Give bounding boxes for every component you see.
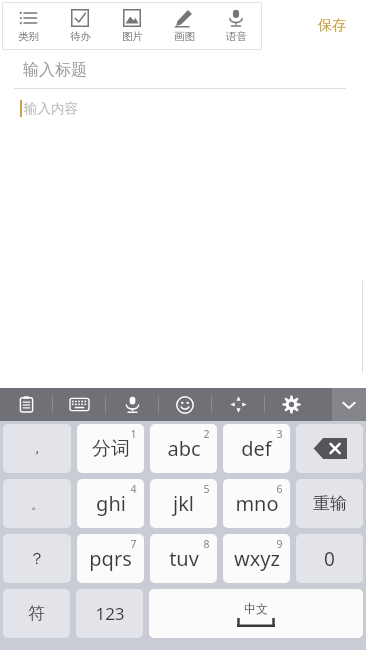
staticText: 3 — [276, 427, 283, 441]
staticText: 语音 — [226, 30, 247, 43]
staticText: ghi — [96, 490, 126, 517]
button[interactable]: 符 — [3, 589, 70, 638]
staticText: 。 — [31, 496, 44, 512]
staticText: 符 — [28, 603, 45, 624]
staticText: 123 — [95, 602, 125, 625]
button[interactable]: ， — [3, 424, 71, 473]
button[interactable]: 图片 — [106, 2, 158, 50]
staticText: 待办 — [70, 30, 91, 43]
button[interactable]: tuv — [150, 534, 217, 583]
staticText: wxyz — [234, 545, 280, 572]
staticText: 7 — [130, 537, 137, 551]
staticText: 图片 — [122, 30, 143, 43]
button[interactable]: 输入内容 — [0, 89, 366, 388]
staticText: 保存 — [318, 17, 346, 35]
button[interactable]: 设置 — [265, 388, 317, 421]
button[interactable]: 表情 — [159, 388, 211, 421]
button[interactable]: 重输 — [296, 479, 363, 528]
staticText: ， — [30, 440, 44, 458]
button[interactable]: 类别 — [2, 2, 54, 50]
staticText: 1 — [130, 427, 137, 441]
button[interactable]: 语音 — [210, 2, 262, 50]
button[interactable]: 中文 — [149, 589, 363, 638]
button[interactable]: wxyz — [223, 534, 290, 583]
button[interactable]: 0 — [296, 534, 363, 583]
staticText: 输入内容 — [24, 100, 78, 117]
button[interactable]: 待办 — [54, 2, 106, 50]
staticText: 输入标题 — [23, 60, 87, 80]
staticText: mno — [235, 490, 279, 517]
button[interactable]: def — [223, 424, 290, 473]
button[interactable]: 保存 — [312, 11, 352, 41]
button[interactable]: mno — [223, 479, 290, 528]
staticText: 分词 — [92, 437, 130, 461]
button[interactable]: 输入标题 — [0, 52, 366, 88]
button[interactable]: 键盘 — [53, 388, 105, 421]
button[interactable]: jkl — [150, 479, 217, 528]
button[interactable]: 分词 — [77, 424, 144, 473]
staticText: ？ — [29, 549, 45, 569]
staticText: 6 — [276, 482, 283, 496]
staticText: pqrs — [89, 545, 132, 572]
staticText: 5 — [203, 482, 210, 496]
staticText: abc — [167, 435, 201, 462]
button[interactable]: ？ — [3, 534, 71, 583]
button[interactable]: 剪贴板 — [0, 388, 52, 421]
staticText: 画图 — [174, 30, 195, 43]
staticText: 类别 — [18, 30, 39, 43]
staticText: 4 — [130, 482, 137, 496]
button[interactable]: pqrs — [77, 534, 144, 583]
staticText: def — [241, 435, 272, 462]
staticText: 中文 — [244, 601, 268, 616]
staticText: 2 — [203, 427, 210, 441]
button[interactable]: 光标移动 — [212, 388, 264, 421]
staticText: tuv — [169, 545, 199, 572]
button[interactable]: 123 — [76, 589, 143, 638]
staticText: 8 — [203, 537, 210, 551]
staticText: 重输 — [313, 493, 347, 514]
staticText: 0 — [324, 546, 335, 572]
button[interactable] — [296, 424, 363, 473]
staticText: jkl — [173, 490, 194, 517]
button[interactable]: 。 — [3, 479, 71, 528]
button[interactable]: ghi — [77, 479, 144, 528]
button[interactable]: 画图 — [158, 2, 210, 50]
staticText: 9 — [276, 537, 283, 551]
button[interactable]: 收起键盘 — [332, 388, 366, 421]
button[interactable]: 语音输入 — [106, 388, 158, 421]
button[interactable]: abc — [150, 424, 217, 473]
